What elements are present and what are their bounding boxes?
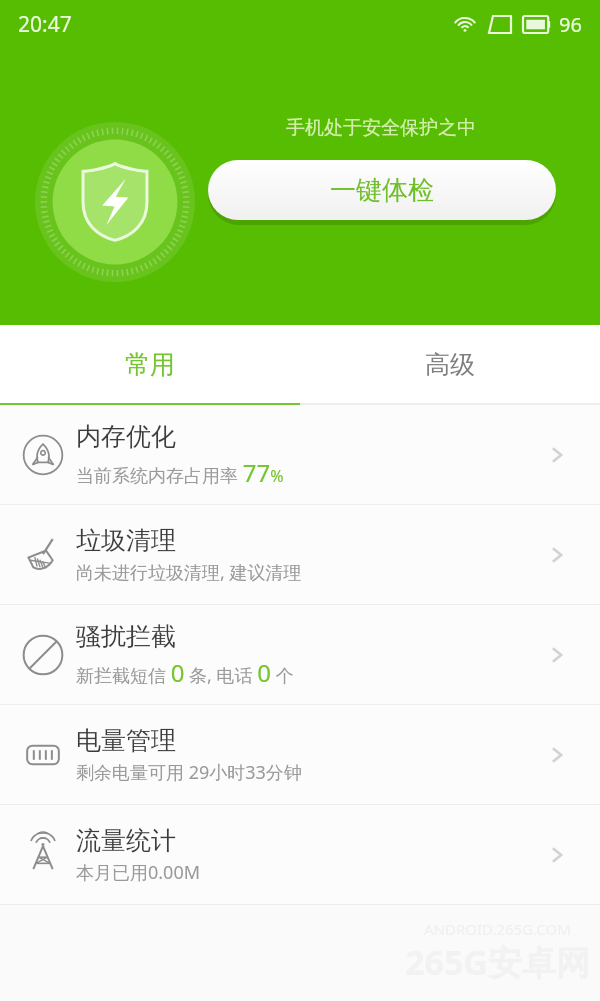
button[interactable]: 电量管理 — [0, 705, 600, 804]
button[interactable]: 一键体检 — [208, 160, 556, 220]
staticText: 内存优化 — [76, 421, 176, 452]
staticText: 265G安卓网 — [405, 939, 590, 985]
button[interactable]: 常用 — [0, 325, 300, 403]
other: Open 内存优化 — [544, 442, 570, 468]
staticText: 20:47 — [18, 10, 72, 39]
staticText: 骚扰拦截 — [76, 621, 176, 652]
staticText: 手机处于安全保护之中 — [286, 116, 476, 140]
other: Open 垃圾清理 — [544, 542, 570, 568]
other: Open 骚扰拦截 — [544, 642, 570, 668]
button[interactable]: 垃圾清理 — [0, 505, 600, 604]
staticText: 流量统计 — [76, 825, 176, 856]
staticText: 剩余电量可用 29小时33分钟 — [76, 760, 302, 785]
staticText: 电量管理 — [76, 725, 176, 756]
staticText: 高级 — [425, 349, 475, 380]
other: Open 电量管理 — [544, 742, 570, 768]
staticText: 尚未进行垃圾清理, 建议清理 — [76, 560, 302, 585]
staticText: 新拦截短信 0 条, 电话 0 个 — [76, 656, 294, 689]
staticText: 一键体检 — [330, 174, 434, 207]
other: Open 流量统计 — [544, 842, 570, 868]
staticText: 常用 — [125, 349, 175, 380]
button[interactable]: 骚扰拦截 — [0, 605, 600, 704]
button[interactable]: 内存优化 — [0, 405, 600, 504]
staticText: ANDROID.265G.COM — [424, 919, 571, 939]
staticText: 当前系统内存占用率 77% — [76, 456, 284, 489]
button[interactable]: 高级 — [300, 325, 600, 403]
staticText: 垃圾清理 — [76, 525, 176, 556]
button[interactable]: 流量统计 — [0, 805, 600, 904]
staticText: 本月已用0.00M — [76, 860, 201, 885]
staticText: 96 — [559, 11, 582, 38]
